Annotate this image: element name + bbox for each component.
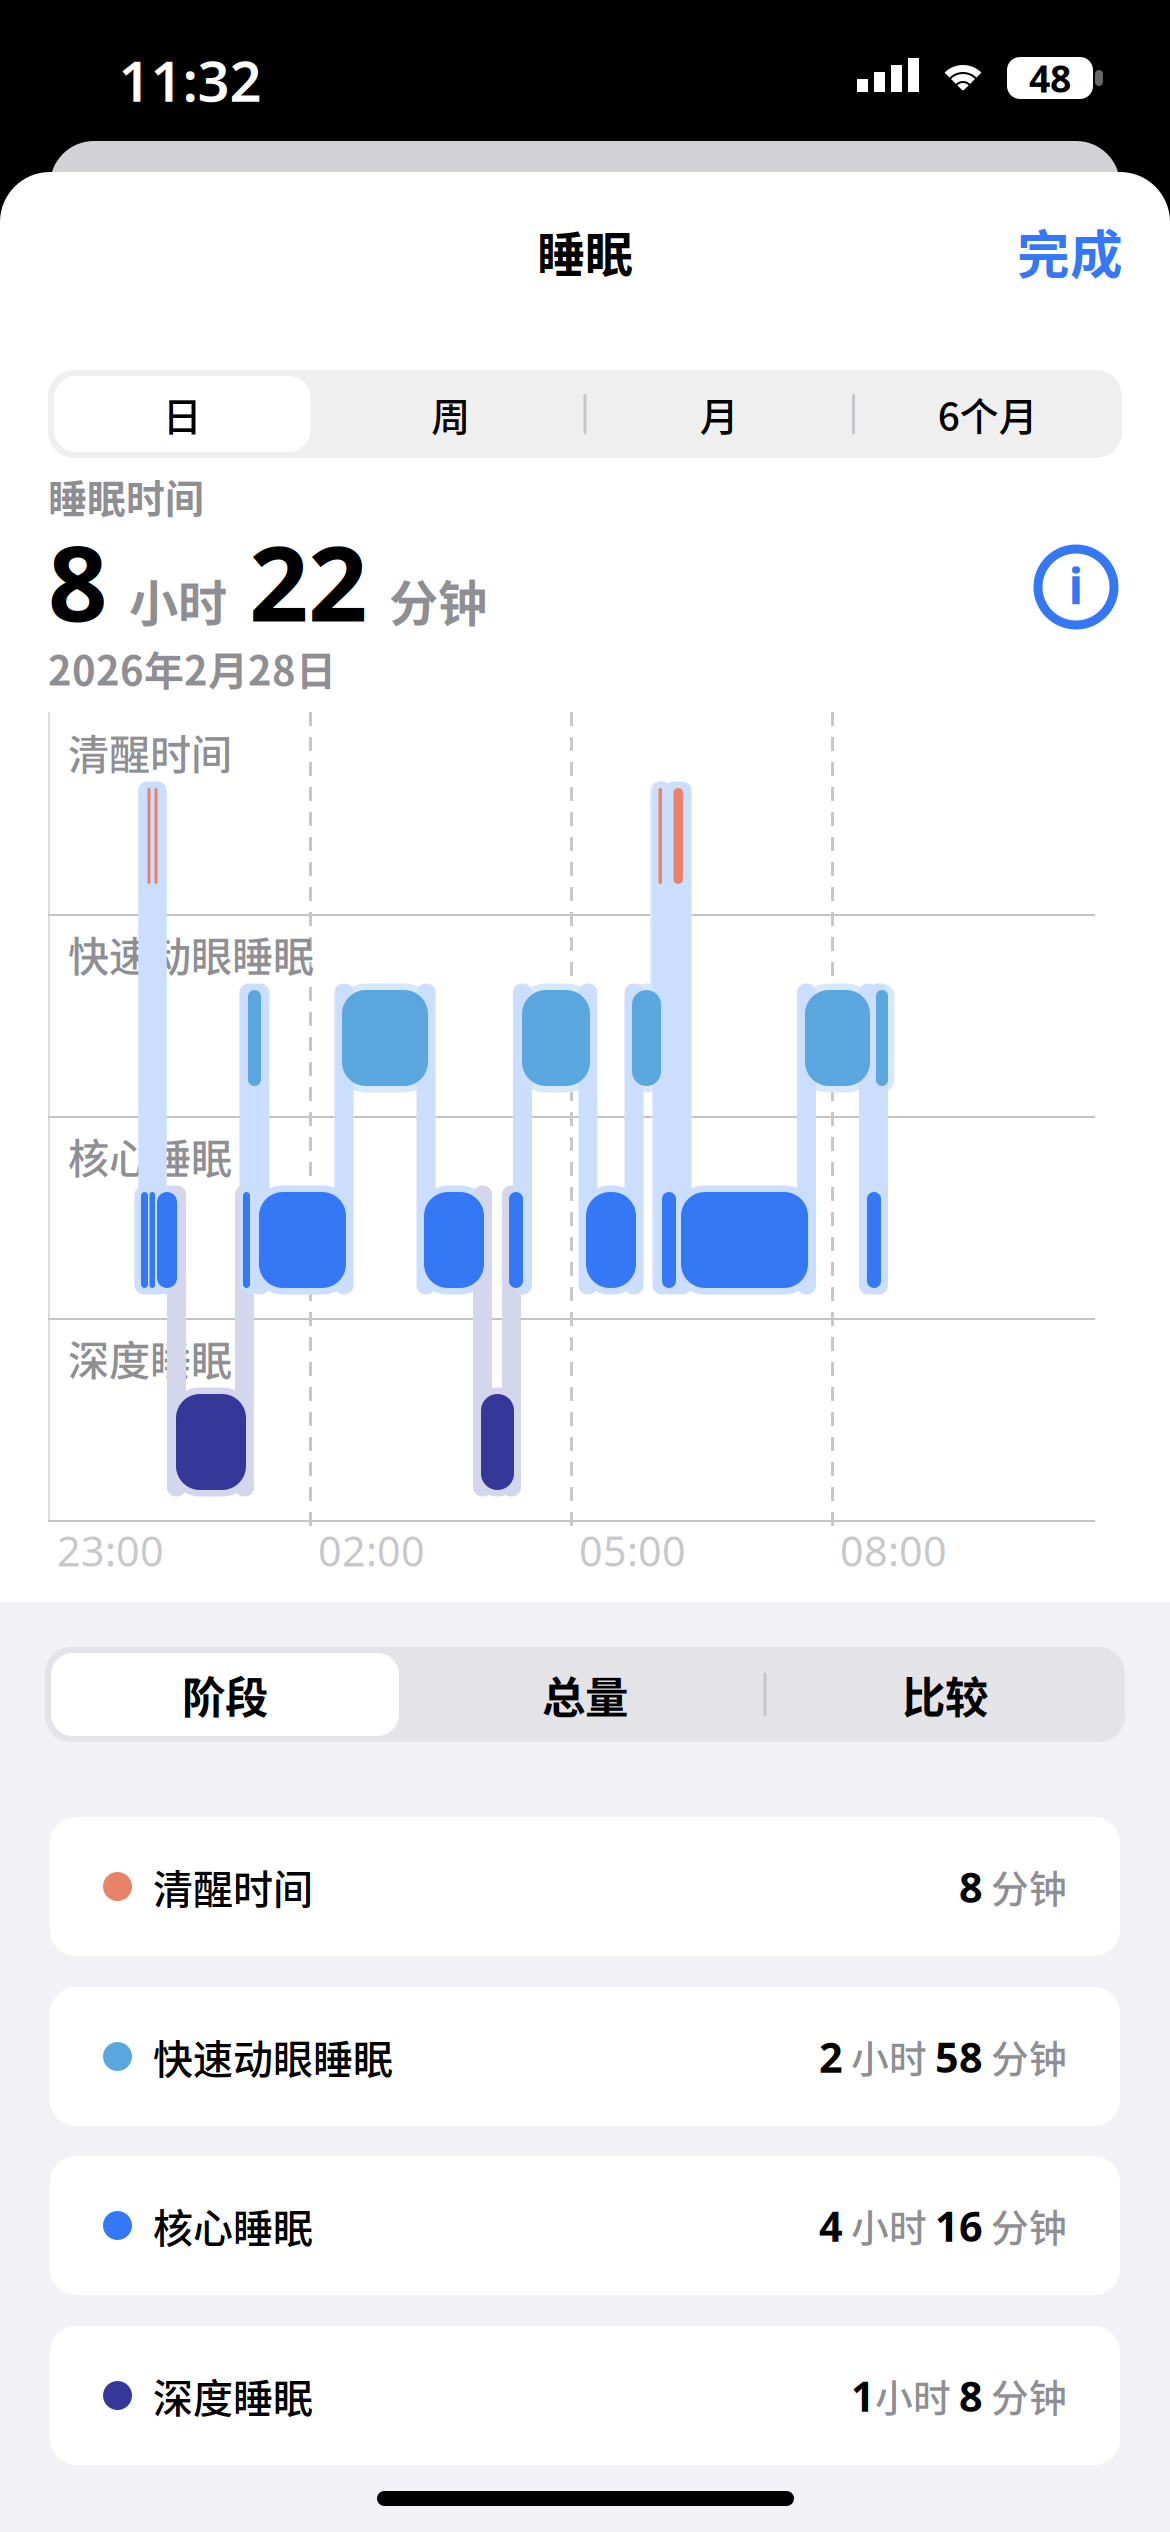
staticText: 8 (959, 1859, 983, 1914)
staticText: 2 (819, 2029, 843, 2084)
staticText: 比较 (902, 1663, 988, 1726)
button[interactable]: 阶段 (45, 1647, 405, 1742)
button[interactable]: 快速动眼睡眠 (50, 1987, 1120, 2126)
staticText: i (1068, 552, 1083, 618)
staticText: 日 (163, 386, 202, 442)
staticText: 6个月 (938, 386, 1038, 442)
button[interactable]: 6个月 (853, 370, 1122, 458)
button[interactable]: 比较 (765, 1647, 1125, 1742)
staticText: 小时 (107, 564, 249, 636)
staticText: 分钟 (983, 1859, 1067, 1913)
staticText: 小时 (843, 2029, 935, 2083)
staticText: 总量 (542, 1663, 628, 1726)
button[interactable]: 信息 (1026, 537, 1126, 637)
staticText: 02:00 (318, 1523, 425, 1578)
staticText: 快速动眼睡眠 (153, 2027, 393, 2085)
staticText: 分钟 (983, 2198, 1067, 2252)
staticText: 清醒时间 (153, 1857, 313, 1915)
staticText: 阶段 (182, 1663, 268, 1726)
button[interactable]: 清醒时间 (50, 1817, 1120, 1956)
staticText: 睡眠时间 (48, 468, 204, 524)
staticText: 05:00 (579, 1523, 686, 1578)
button[interactable]: 深度睡眠 (50, 2326, 1120, 2465)
staticText: 分钟 (367, 564, 487, 636)
button[interactable]: 完成 (943, 203, 1123, 299)
staticText: 58 (935, 2029, 983, 2084)
staticText: 深度睡眠 (153, 2366, 313, 2424)
staticText: 1 (851, 2368, 875, 2423)
staticText: 48 (1029, 53, 1071, 103)
staticText: 周 (431, 386, 470, 442)
staticText: 分钟 (983, 2368, 1067, 2422)
staticText: 分钟 (983, 2029, 1067, 2083)
button[interactable]: 日 (48, 370, 316, 458)
button[interactable]: 核心睡眠 (50, 2156, 1120, 2295)
button[interactable]: 周 (316, 370, 585, 458)
staticText: 小时 (843, 2198, 935, 2252)
staticText: 8 (959, 2368, 983, 2423)
staticText: 小时 (875, 2368, 959, 2422)
button[interactable]: 月 (585, 370, 853, 458)
staticText: 清醒时间 (68, 722, 232, 782)
staticText: 4 (819, 2198, 843, 2253)
staticText: 11:32 (118, 43, 261, 117)
staticText: 16 (935, 2198, 983, 2253)
staticText: 22 (249, 512, 367, 650)
button[interactable]: 总量 (405, 1647, 765, 1742)
staticText: 快速动眼睡眠 (68, 924, 314, 984)
staticText: 23:00 (57, 1523, 164, 1578)
staticText: 完成 (1017, 213, 1123, 289)
staticText: 核心睡眠 (153, 2196, 313, 2254)
staticText: 深度睡眠 (68, 1328, 232, 1388)
staticText: 8 (48, 512, 107, 650)
staticText: 月 (700, 386, 739, 442)
staticText: 08:00 (840, 1523, 947, 1578)
staticText: 睡眠 (537, 216, 633, 286)
staticText: 2026年2月28日 (48, 639, 336, 697)
staticText: 核心睡眠 (68, 1126, 232, 1186)
